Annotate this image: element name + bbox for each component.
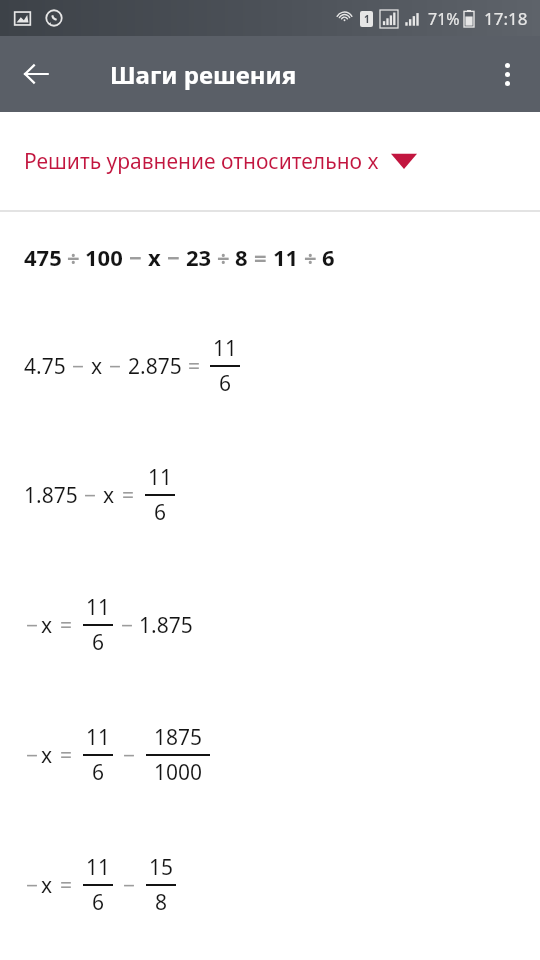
staticText: 1875 bbox=[154, 723, 203, 752]
staticText: = bbox=[254, 242, 267, 272]
staticText: − bbox=[123, 871, 136, 900]
staticText: 1.875 bbox=[139, 611, 193, 640]
staticText: 11 bbox=[86, 853, 111, 882]
staticText: 6 bbox=[92, 758, 105, 787]
staticText: 11 bbox=[273, 242, 299, 272]
staticText: − bbox=[123, 741, 136, 770]
staticText: 11 bbox=[213, 334, 238, 363]
staticText: 6 bbox=[92, 628, 105, 657]
staticText: − bbox=[26, 741, 39, 770]
staticText: 4.75 bbox=[24, 352, 66, 381]
staticText: 6 bbox=[154, 498, 167, 527]
staticText: 2.875 bbox=[128, 352, 182, 381]
staticText: 475 bbox=[24, 242, 62, 272]
staticText: 6 bbox=[92, 888, 105, 917]
staticText: 71% bbox=[428, 8, 460, 30]
staticText: 8 bbox=[155, 888, 168, 917]
staticText: 1 bbox=[364, 12, 370, 26]
staticText: 23 bbox=[186, 242, 212, 272]
staticText: = bbox=[188, 352, 201, 381]
staticText: x bbox=[91, 352, 103, 381]
staticText: Решить уравнение относительно x bbox=[24, 147, 379, 176]
staticText: x bbox=[103, 481, 115, 510]
staticText: = bbox=[122, 481, 135, 510]
staticText: 11 bbox=[86, 593, 111, 622]
staticText: x bbox=[41, 871, 53, 900]
staticText: − bbox=[167, 242, 180, 272]
staticText: − bbox=[121, 611, 134, 640]
staticText: ÷ bbox=[67, 242, 80, 272]
staticText: x bbox=[41, 611, 53, 640]
staticText: − bbox=[26, 611, 39, 640]
staticText: = bbox=[60, 611, 73, 640]
staticText: ÷ bbox=[217, 242, 230, 272]
staticText: 15 bbox=[149, 853, 174, 882]
staticText: ÷ bbox=[304, 242, 317, 272]
staticText: − bbox=[84, 481, 97, 510]
staticText: = bbox=[60, 741, 73, 770]
staticText: − bbox=[26, 871, 39, 900]
staticText: 1.875 bbox=[24, 481, 78, 510]
staticText: − bbox=[109, 352, 122, 381]
staticText: − bbox=[72, 352, 85, 381]
staticText: = bbox=[60, 871, 73, 900]
staticText: 1000 bbox=[154, 758, 203, 787]
button[interactable]: Back bbox=[10, 48, 62, 100]
staticText: − bbox=[129, 242, 142, 272]
staticText: 6 bbox=[322, 242, 335, 272]
button[interactable]: More options bbox=[482, 49, 532, 99]
staticText: 6 bbox=[219, 369, 232, 398]
staticText: x bbox=[148, 242, 161, 272]
staticText: 11 bbox=[86, 723, 111, 752]
button[interactable]: Решить уравнение относительно x bbox=[0, 112, 540, 210]
staticText: 100 bbox=[85, 242, 123, 272]
staticText: 17:18 bbox=[484, 7, 528, 30]
staticText: Шаги решения bbox=[110, 58, 297, 91]
staticText: 11 bbox=[148, 463, 173, 492]
staticText: x bbox=[41, 741, 53, 770]
staticText: 8 bbox=[235, 242, 248, 272]
